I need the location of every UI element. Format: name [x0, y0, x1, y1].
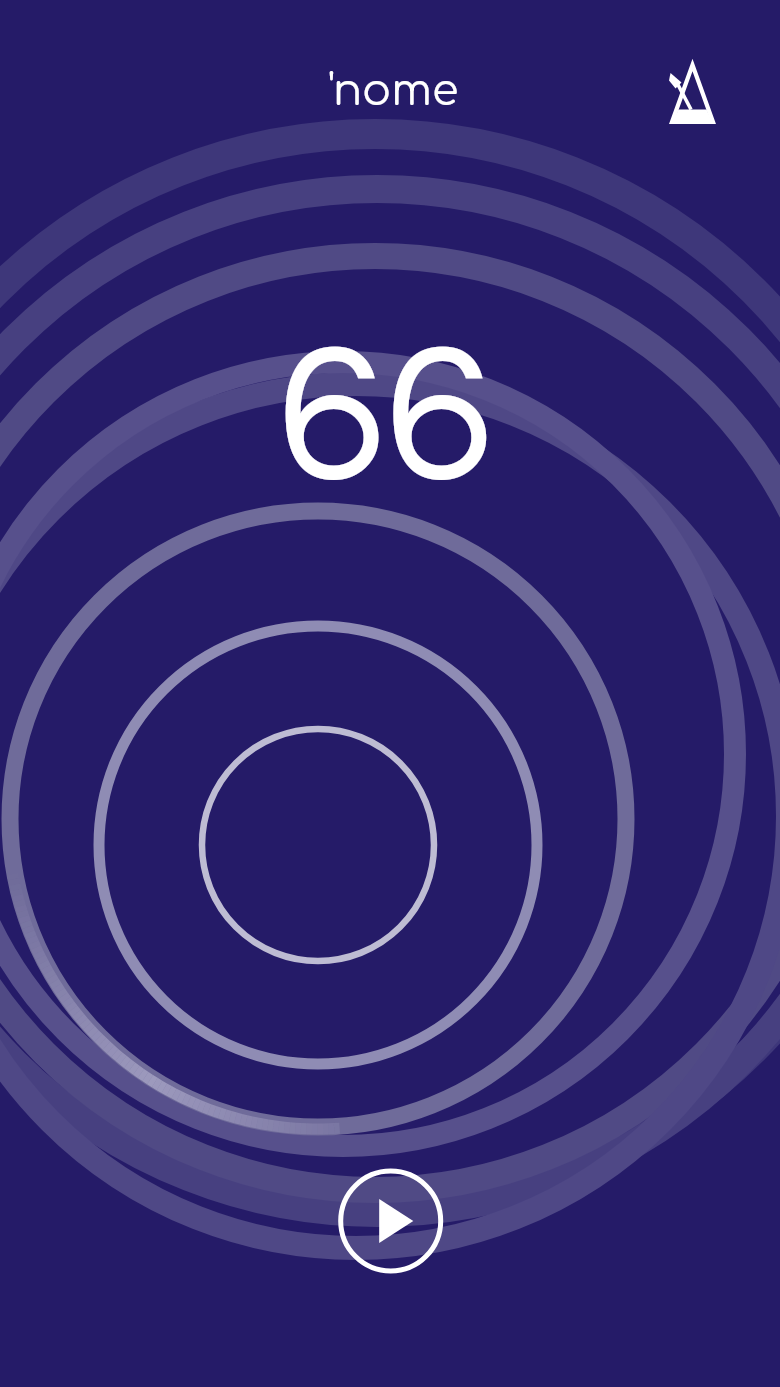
staticText: 'nome: [328, 67, 459, 115]
button[interactable]: 'nome: [328, 67, 459, 115]
button[interactable]: Play: [336, 1166, 446, 1276]
staticText: 66: [277, 317, 493, 519]
button[interactable]: Metronome: [666, 58, 720, 128]
